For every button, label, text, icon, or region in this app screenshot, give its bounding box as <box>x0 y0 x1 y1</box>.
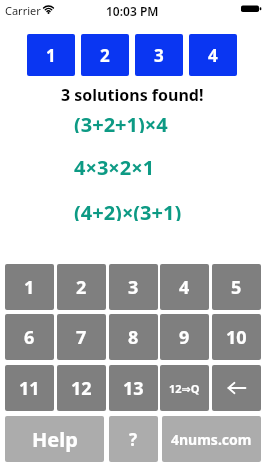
button[interactable]: 8 <box>109 314 158 360</box>
staticText: 7 <box>76 325 87 350</box>
staticText: 5 <box>231 275 242 300</box>
button[interactable]: 10 <box>212 314 261 360</box>
staticText: 12⇒Q <box>169 381 200 396</box>
button[interactable]: ? <box>109 416 158 462</box>
button[interactable]: 4 <box>160 264 209 310</box>
button[interactable]: 4nums.com <box>162 416 261 462</box>
staticText: 3 <box>128 275 139 300</box>
button[interactable]: 12⇒Q <box>160 365 209 411</box>
staticText: 1 <box>46 44 56 67</box>
staticText: 6 <box>24 325 35 350</box>
staticText: ? <box>129 428 138 451</box>
staticText: 2 <box>100 44 110 67</box>
button[interactable]: 3 <box>109 264 158 310</box>
button[interactable]: 4 <box>189 34 237 76</box>
button[interactable]: 7 <box>57 314 106 360</box>
staticText: 13 <box>123 376 144 401</box>
staticText: Carrier <box>5 3 41 18</box>
staticText: 3 solutions found! <box>61 84 204 102</box>
button[interactable]: 9 <box>160 314 209 360</box>
button[interactable]: 1 <box>5 264 54 310</box>
button[interactable]: Help <box>5 416 104 462</box>
button[interactable] <box>212 365 261 411</box>
staticText: Help <box>32 426 78 453</box>
staticText: 4nums.com <box>171 430 252 449</box>
button[interactable]: 6 <box>5 314 54 360</box>
staticText: 2 <box>76 275 87 300</box>
staticText: 4 <box>208 44 218 67</box>
staticText: 4×3×2×1 <box>74 154 155 176</box>
staticText: 9 <box>179 325 190 350</box>
staticText: 11 <box>19 376 40 401</box>
button[interactable]: 2 <box>57 264 106 310</box>
staticText: 10 <box>226 325 247 350</box>
button[interactable]: 13 <box>109 365 158 411</box>
staticText: 12 <box>71 376 92 401</box>
staticText: (3+2+1)×4 <box>74 111 168 133</box>
button[interactable]: 11 <box>5 365 54 411</box>
staticText: (4+2)×(3+1) <box>74 199 182 221</box>
button[interactable]: 12 <box>57 365 106 411</box>
staticText: 10:03 PM <box>106 3 159 19</box>
staticText: 8 <box>128 325 139 350</box>
button[interactable]: 1 <box>27 34 75 76</box>
staticText: 1 <box>24 275 35 300</box>
button[interactable]: 3 <box>135 34 183 76</box>
staticText: 3 <box>154 44 164 67</box>
button[interactable]: 5 <box>212 264 261 310</box>
button[interactable]: 2 <box>81 34 129 76</box>
staticText: 4 <box>179 275 190 300</box>
